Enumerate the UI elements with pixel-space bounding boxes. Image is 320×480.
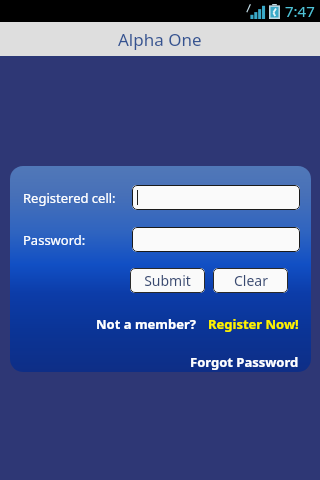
button[interactable] xyxy=(132,185,300,210)
staticText: Registered cell: xyxy=(23,189,116,207)
button[interactable] xyxy=(132,227,300,252)
staticText: Submit xyxy=(144,271,191,290)
button[interactable]: Submit xyxy=(130,268,205,293)
staticText: Alpha One xyxy=(118,28,202,51)
staticText: Clear xyxy=(234,271,268,290)
staticText: Register Now! xyxy=(208,315,299,333)
button[interactable]: Clear xyxy=(213,268,288,293)
staticText: 7:47 xyxy=(285,1,315,21)
button[interactable]: Register Now! xyxy=(208,315,299,333)
staticText: Forgot Password xyxy=(190,353,299,371)
staticText: Password: xyxy=(23,231,86,249)
staticText: Not a member? xyxy=(96,315,196,333)
button[interactable]: Forgot Password xyxy=(190,353,299,371)
